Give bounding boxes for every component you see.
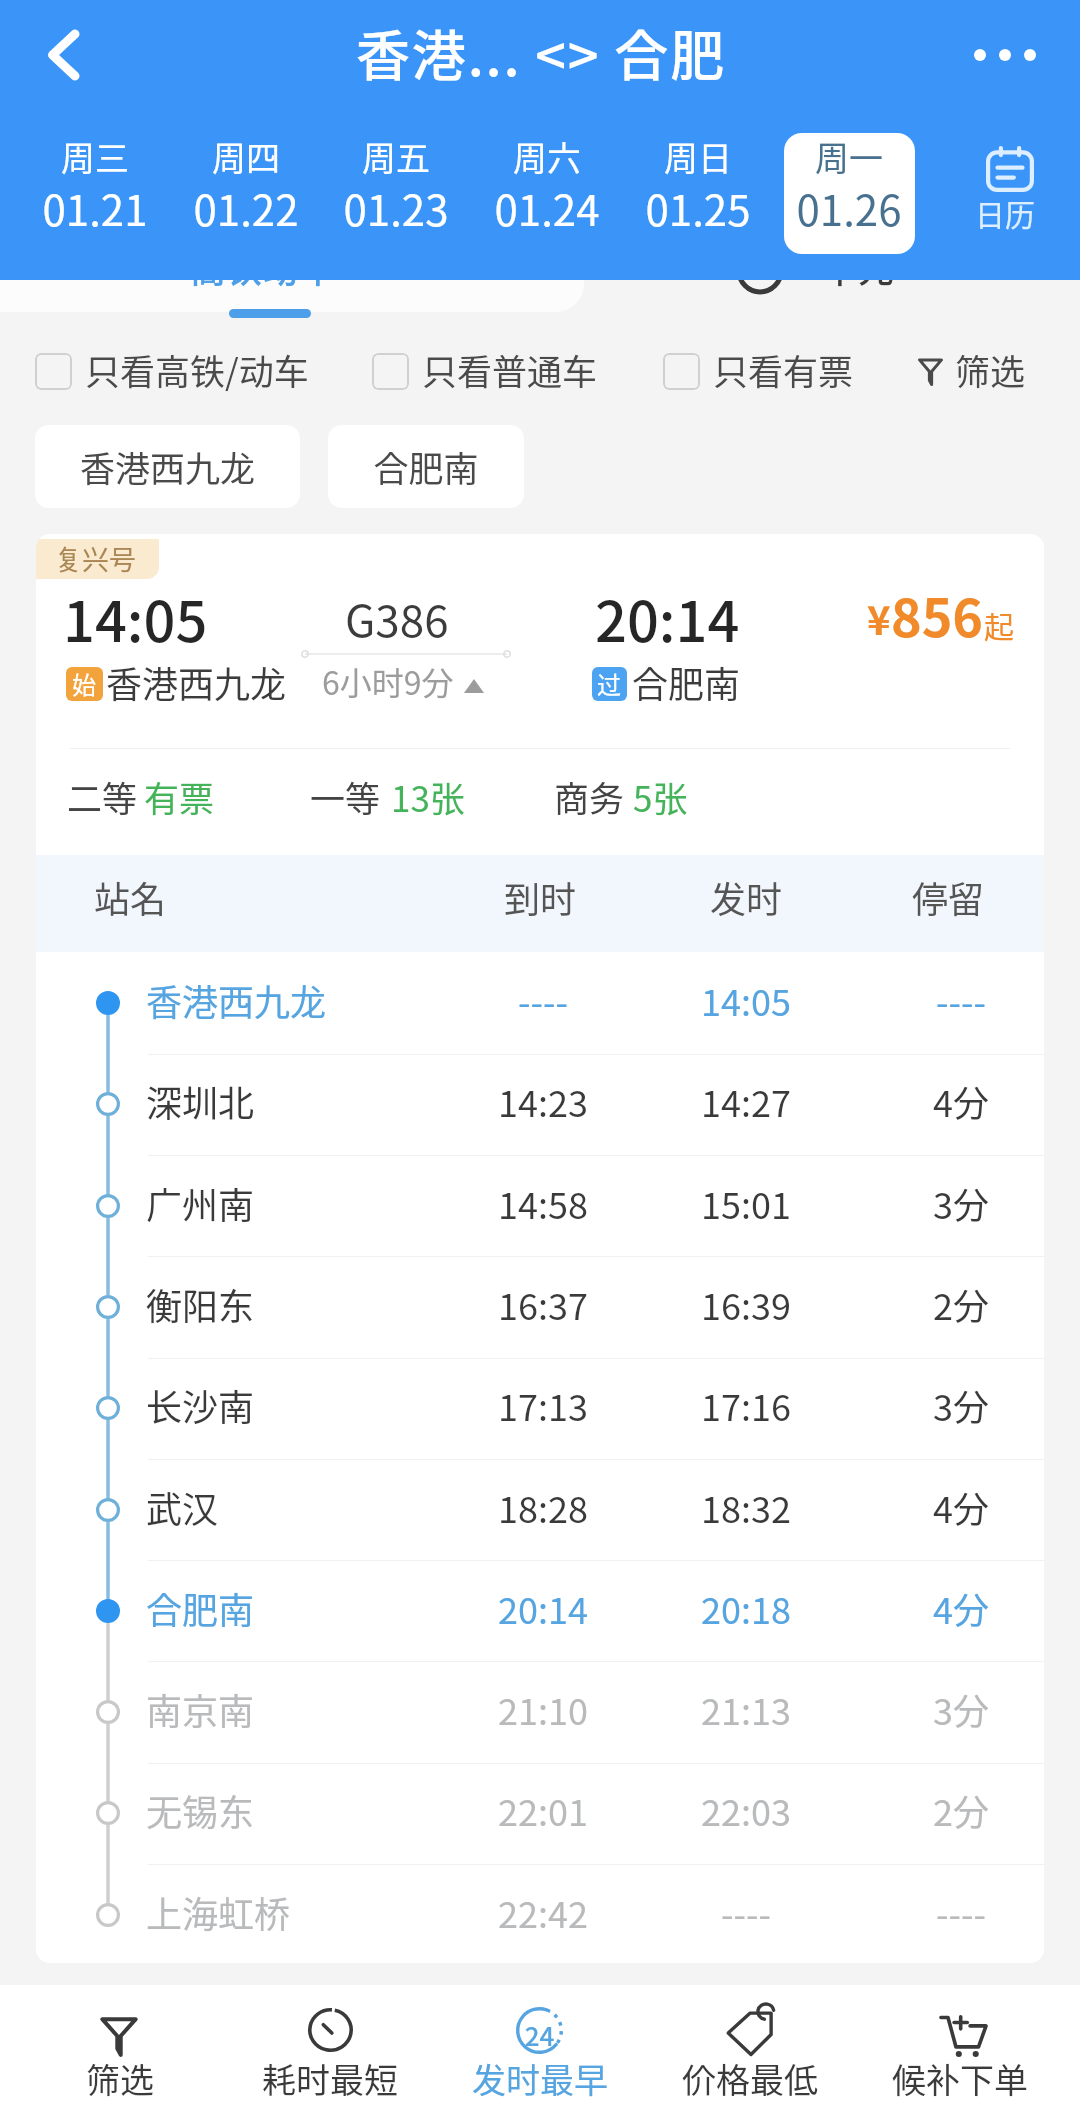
staticText: 复兴号 [55, 539, 136, 578]
staticText: 01.23 [321, 177, 471, 238]
staticText: 01.26 [774, 177, 924, 238]
staticText: 一等 [310, 771, 381, 822]
staticText: 深圳北 [146, 1075, 255, 1127]
staticText: 4分 [891, 1582, 1031, 1634]
staticText: 24 [516, 2016, 563, 2054]
staticText: ---- [891, 1886, 1031, 1938]
staticText: 候补下单 [855, 2054, 1065, 2103]
button[interactable]: 周五 [321, 133, 471, 254]
staticText: 16:37 [473, 1278, 613, 1330]
staticText: 广州南 [146, 1177, 255, 1229]
staticText: 二等 [67, 771, 138, 822]
button[interactable]: 筛选 [15, 1985, 225, 2127]
staticText: 3分 [891, 1379, 1031, 1431]
staticText: 周五 [321, 132, 471, 181]
staticText: 2分 [891, 1278, 1031, 1330]
staticText: 只看高铁/动车 [85, 344, 309, 395]
staticText: 商务 [554, 771, 625, 822]
staticText: 14:05 [63, 577, 208, 658]
staticText: G386 [345, 586, 449, 650]
staticText: 22:42 [473, 1886, 613, 1938]
staticText: 4分 [891, 1075, 1031, 1127]
staticText: 香港西九龙 [35, 441, 300, 492]
staticText: 3分 [891, 1683, 1031, 1735]
button[interactable]: 只看高铁/动车 [35, 340, 309, 402]
button[interactable]: 耗时最短 [225, 1985, 435, 2127]
staticText: 18:32 [676, 1481, 816, 1533]
staticText: 14:23 [473, 1075, 613, 1127]
button[interactable]: 合肥南 [328, 425, 524, 508]
staticText: 15:01 [676, 1177, 816, 1229]
button[interactable]: More options [950, 0, 1060, 110]
staticText: 价格最低 [645, 2054, 855, 2103]
staticText: ---- [676, 1886, 816, 1938]
staticText: 20:14 [595, 577, 740, 658]
button[interactable]: 周六 [472, 133, 622, 254]
staticText: 上海虹桥 [146, 1886, 291, 1938]
staticText: 6小时9分 [322, 658, 454, 704]
button[interactable]: Calendar [930, 125, 1080, 260]
staticText: 无锡东 [146, 1784, 255, 1836]
staticText: 周六 [472, 132, 622, 181]
staticText: ¥ [867, 589, 891, 647]
staticText: 停留 [878, 871, 1018, 923]
staticText: 千元 [822, 241, 895, 293]
staticText: 856 [891, 577, 984, 652]
staticText: 18:28 [473, 1481, 613, 1533]
button[interactable]: 周一 [774, 133, 924, 254]
staticText: 周一 [774, 132, 924, 181]
staticText: 武汉 [146, 1481, 219, 1533]
button[interactable]: 香港西九龙 [35, 425, 300, 508]
staticText: 合肥南 [632, 656, 741, 708]
staticText: 13张 [391, 771, 465, 822]
staticText: ---- [473, 974, 613, 1026]
button[interactable]: 周四 [171, 133, 321, 254]
staticText: 01.21 [20, 177, 170, 238]
staticText: 周三 [20, 132, 170, 181]
staticText: 22:01 [473, 1784, 613, 1836]
staticText: 有票 [144, 771, 215, 822]
staticText: 16:39 [676, 1278, 816, 1330]
staticText: 筛选 [955, 344, 1026, 395]
staticText: 耗时最短 [225, 2054, 435, 2103]
staticText: 起 [984, 603, 1014, 646]
staticText: 14:05 [676, 974, 816, 1026]
button[interactable]: 24 [435, 1985, 645, 2127]
staticText: 高铁动车 [190, 241, 335, 293]
staticText: 4分 [891, 1481, 1031, 1533]
staticText: 14:58 [473, 1177, 613, 1229]
staticText: 只看有票 [713, 344, 854, 395]
staticText: 01.22 [171, 177, 321, 238]
staticText: 香港... <> 合肥 [1, 13, 1080, 91]
staticText: 3分 [891, 1177, 1031, 1229]
button[interactable]: 周日 [623, 133, 773, 254]
staticText: 过 [597, 667, 621, 700]
staticText: 发时最早 [435, 2054, 645, 2103]
staticText: 只看普通车 [422, 344, 598, 395]
staticText: 香港西九龙 [146, 974, 327, 1026]
staticText: 2分 [891, 1784, 1031, 1836]
staticText: ---- [891, 974, 1031, 1026]
staticText: 20:18 [676, 1582, 816, 1634]
staticText: 22:03 [676, 1784, 816, 1836]
staticText: 周日 [623, 132, 773, 181]
button[interactable]: 复兴号 [36, 534, 1044, 1963]
button[interactable]: 筛选 [918, 340, 1026, 402]
staticText: 合肥南 [146, 1582, 255, 1634]
button[interactable]: 价格最低 [645, 1985, 855, 2127]
button[interactable]: 候补下单 [855, 1985, 1065, 2127]
staticText: 南京南 [146, 1683, 255, 1735]
staticText: 衡阳东 [146, 1278, 255, 1330]
staticText: 17:16 [676, 1379, 816, 1431]
button[interactable]: 周三 [20, 133, 170, 254]
staticText: 筛选 [15, 2054, 225, 2103]
staticText: 日历 [930, 191, 1080, 234]
staticText: 21:13 [676, 1683, 816, 1735]
staticText: 5张 [633, 771, 688, 822]
staticText: 始 [72, 667, 96, 700]
staticText: 到时 [470, 871, 610, 923]
button[interactable]: 只看有票 [663, 340, 854, 402]
button[interactable]: 只看普通车 [372, 340, 598, 402]
button[interactable]: Back [10, 0, 120, 110]
staticText: 20:14 [473, 1582, 613, 1634]
